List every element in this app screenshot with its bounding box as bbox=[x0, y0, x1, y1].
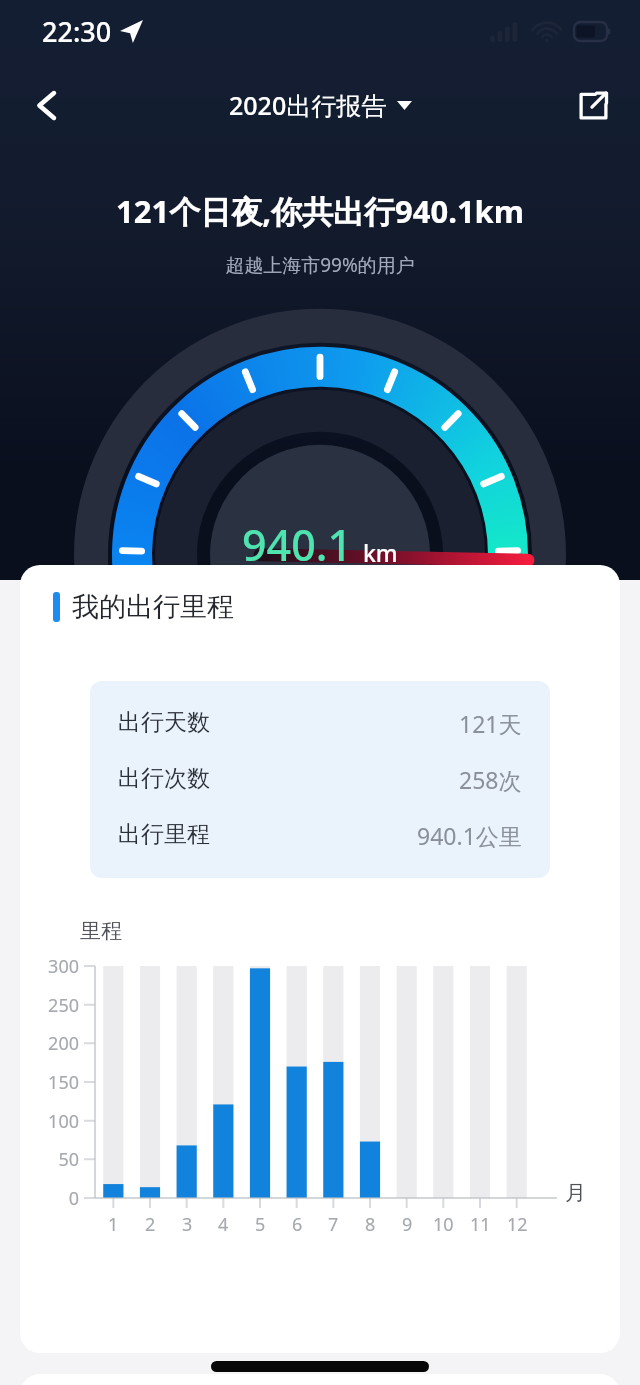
staticText: 里程 bbox=[80, 918, 122, 944]
staticText: 8 bbox=[365, 1212, 376, 1237]
staticText: 50 bbox=[58, 1147, 79, 1172]
button[interactable]: 2020出行报告 bbox=[219, 80, 422, 130]
staticText: 121天 bbox=[459, 708, 522, 739]
staticText: 940.1公里 bbox=[417, 820, 522, 851]
staticText: km bbox=[363, 537, 398, 568]
staticText: 100 bbox=[48, 1109, 79, 1134]
staticText: 200 bbox=[48, 1031, 79, 1056]
staticText: 300 bbox=[48, 954, 79, 979]
staticText: 出行天数 bbox=[118, 708, 210, 737]
staticText: 11 bbox=[470, 1212, 491, 1237]
staticText: 月 bbox=[565, 1180, 586, 1206]
staticText: 121个日夜,你共出行940.1km bbox=[0, 190, 640, 232]
staticText: 0 bbox=[68, 1186, 79, 1211]
staticText: 258次 bbox=[459, 764, 522, 795]
staticText: 5 bbox=[255, 1212, 266, 1237]
button[interactable]: Share bbox=[562, 74, 624, 136]
staticText: 2 bbox=[145, 1212, 156, 1237]
staticText: 3 bbox=[182, 1212, 193, 1237]
staticText: 940.1 bbox=[242, 515, 353, 574]
staticText: 6 bbox=[292, 1212, 303, 1237]
staticText: 2020出行报告 bbox=[229, 88, 387, 122]
staticText: 12 bbox=[507, 1212, 528, 1237]
staticText: 250 bbox=[48, 993, 79, 1018]
staticText: 超越上海市99%的用户 bbox=[0, 252, 640, 278]
staticText: 出行里程 bbox=[118, 820, 210, 849]
staticText: 7 bbox=[328, 1212, 339, 1237]
staticText: 10 bbox=[433, 1212, 454, 1237]
staticText: 4 bbox=[218, 1212, 229, 1237]
staticText: 150 bbox=[48, 1070, 79, 1095]
staticText: 9 bbox=[402, 1212, 413, 1237]
staticText: 出行次数 bbox=[118, 764, 210, 793]
staticText: 我的出行里程 bbox=[72, 590, 234, 624]
button[interactable]: Back bbox=[16, 74, 78, 136]
staticText: 1 bbox=[108, 1212, 119, 1237]
staticText: 22:30 bbox=[42, 13, 112, 50]
